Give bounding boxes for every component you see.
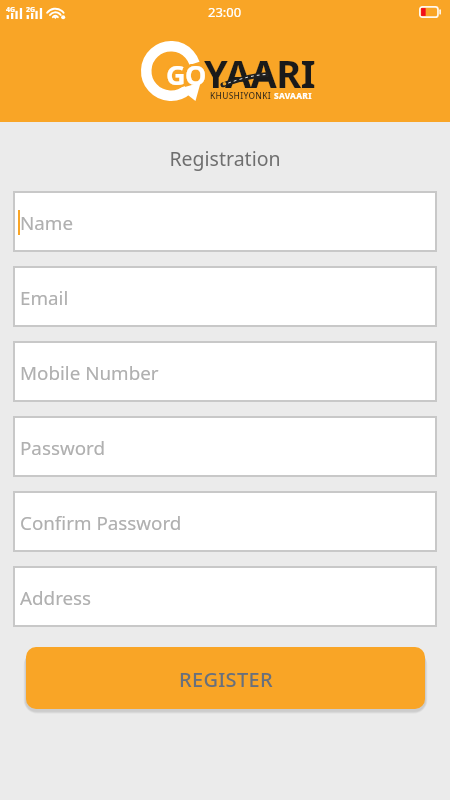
staticText: GO (166, 57, 206, 94)
staticText: Address (20, 585, 92, 611)
staticText: GO (167, 56, 207, 93)
staticText: 23:00 (208, 3, 242, 21)
button[interactable]: Name (13, 191, 437, 252)
staticText: REGISTER (179, 666, 273, 693)
button[interactable]: Mobile Number (13, 341, 437, 402)
staticText: Registration (0, 145, 450, 172)
staticText: GO (164, 58, 204, 95)
staticText: GO (167, 54, 207, 91)
staticText: 4G (6, 5, 16, 15)
staticText: Name (20, 210, 74, 236)
staticText: GO (164, 57, 204, 94)
staticText: GO (166, 55, 206, 92)
staticText: KHUSHIYONKI (210, 90, 274, 101)
staticText: GO (165, 54, 205, 91)
staticText: GO (165, 55, 205, 92)
staticText: SAVAARI (274, 90, 312, 101)
staticText: 2G (26, 5, 36, 15)
staticText: GO (168, 54, 208, 91)
button[interactable]: Address (13, 566, 437, 627)
button[interactable]: Email (13, 266, 437, 327)
staticText: GO (164, 55, 204, 92)
staticText: GO (164, 56, 204, 93)
staticText: GO (167, 57, 207, 94)
other: Wi-Fi (47, 7, 66, 19)
staticText: GO (166, 58, 206, 95)
staticText: GO (165, 58, 205, 95)
staticText: GO (168, 58, 208, 95)
staticText: GO (167, 55, 207, 92)
staticText: Password (20, 435, 106, 461)
staticText: GO (167, 58, 207, 95)
staticText: Mobile Number (20, 360, 159, 386)
button[interactable]: Password (13, 416, 437, 477)
other: Battery (419, 6, 441, 18)
staticText: Email (20, 285, 69, 311)
staticText: GO (165, 56, 205, 93)
staticText: GO (168, 55, 208, 92)
staticText: GO (164, 54, 204, 91)
staticText: GO (166, 54, 206, 91)
staticText: GO (166, 56, 206, 93)
staticText: YAARI (204, 47, 315, 99)
staticText: GO (168, 57, 208, 94)
button[interactable]: Confirm Password (13, 491, 437, 552)
staticText: GO (168, 56, 208, 93)
staticText: Confirm Password (20, 510, 182, 536)
button[interactable]: REGISTER (26, 647, 425, 709)
staticText: GO (165, 57, 205, 94)
